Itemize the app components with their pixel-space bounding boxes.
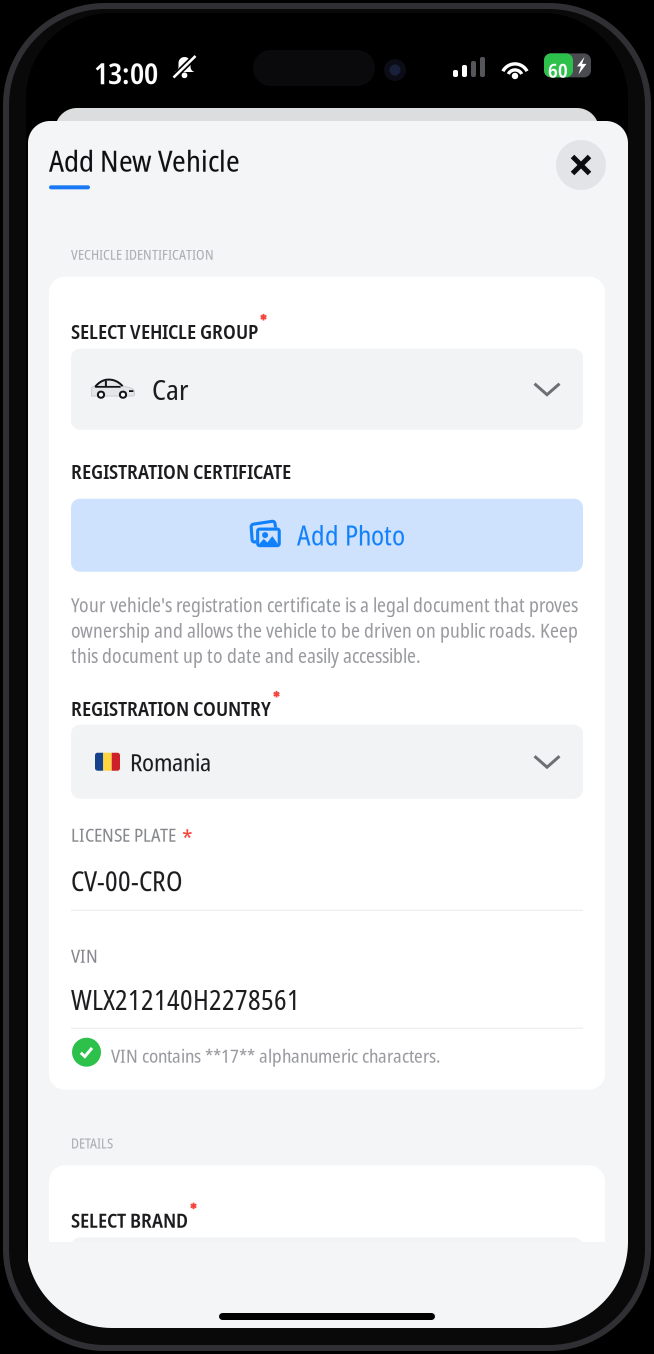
staticText: Add New Vehicle (49, 140, 240, 180)
button[interactable]: Car (71, 349, 583, 430)
staticText: DETAILS (71, 1134, 113, 1152)
staticText: 13:00 (94, 53, 158, 93)
staticText: VIN contains **17** alphanumeric charact… (111, 1043, 440, 1068)
staticText: WLX212140H2278561 (71, 982, 300, 1018)
staticText: SELECT BRAND (71, 1206, 188, 1234)
button[interactable]: Romania (71, 725, 583, 799)
staticText: * (182, 822, 193, 854)
staticText: SELECT VEHICLE GROUP (71, 318, 258, 345)
staticText: 60 (548, 56, 568, 84)
staticText: Car (152, 370, 188, 408)
button[interactable] (71, 1237, 583, 1318)
staticText: VECHICLE IDENTIFICATION (71, 245, 214, 264)
staticText: Add Photo (297, 517, 405, 553)
staticText: REGISTRATION COUNTRY (71, 695, 271, 722)
staticText: REGISTRATION CERTIFICATE (71, 458, 291, 485)
staticText: LICENSE PLATE (71, 822, 176, 847)
staticText: VIN (71, 943, 98, 968)
staticText: CV-00-CRO (71, 863, 183, 899)
button[interactable]: Close (556, 140, 606, 190)
staticText: Your vehicle's registration certificate … (71, 592, 578, 669)
staticText: Romania (130, 745, 211, 778)
button[interactable]: Add Photo (71, 499, 583, 572)
